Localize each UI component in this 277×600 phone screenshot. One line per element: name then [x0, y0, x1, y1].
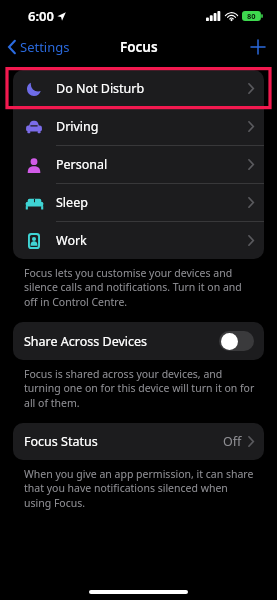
- staticText: Off: [223, 433, 242, 450]
- staticText: Settings: [20, 38, 70, 56]
- button[interactable]: Driving: [13, 108, 264, 145]
- staticText: 80: [247, 11, 256, 21]
- staticText: Do Not Disturb: [56, 80, 145, 97]
- staticText: Focus: [120, 38, 158, 56]
- staticText: Share Across Devices: [24, 333, 148, 350]
- button[interactable]: Focus Status: [13, 423, 264, 460]
- staticText: Work: [56, 232, 87, 249]
- button[interactable]: Personal: [13, 146, 264, 183]
- other: Share Across Devices toggle, off: [219, 331, 254, 351]
- staticText: Focus lets you customise your devices an…: [24, 266, 257, 309]
- button[interactable]: Do Not Disturb: [13, 70, 264, 107]
- button[interactable]: Add Focus: [239, 34, 277, 60]
- staticText: Sleep: [56, 194, 88, 211]
- button[interactable]: Sleep: [13, 184, 264, 221]
- staticText: 6:00: [28, 7, 54, 25]
- staticText: Focus is shared across your devices, and…: [24, 367, 257, 410]
- staticText: When you give an app permission, it can …: [24, 467, 257, 510]
- staticText: Driving: [56, 118, 99, 135]
- button[interactable]: Share Across Devices: [13, 322, 264, 360]
- button[interactable]: Settings: [0, 35, 78, 59]
- button[interactable]: Work: [13, 222, 264, 259]
- staticText: Focus Status: [24, 433, 98, 450]
- staticText: Personal: [56, 156, 108, 173]
